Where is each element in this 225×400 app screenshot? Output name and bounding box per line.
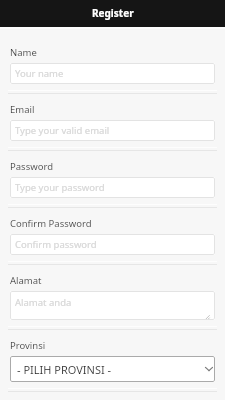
staticText: Type your valid email [15, 124, 110, 137]
button[interactable]: Type your valid email [10, 120, 215, 141]
button[interactable]: Your name [10, 63, 215, 84]
staticText: Password [10, 160, 53, 173]
button[interactable]: Confirm password [10, 234, 215, 255]
staticText: - PILIH PROVINSI - [17, 362, 112, 377]
staticText: Confirm Password [10, 217, 92, 230]
staticText: Alamat [10, 274, 42, 287]
staticText: Provinsi [10, 339, 46, 352]
staticText: Name [10, 46, 37, 59]
staticText: Email [10, 103, 35, 116]
staticText: Confirm password [15, 238, 97, 251]
button[interactable]: - PILIH PROVINSI - [10, 356, 215, 382]
staticText: Alamat anda [15, 296, 72, 309]
staticText: Your name [15, 67, 64, 80]
staticText: Register [92, 6, 134, 20]
button[interactable]: Type your password [10, 177, 215, 198]
staticText: Type your password [15, 181, 105, 194]
button[interactable]: Alamat anda [10, 291, 215, 320]
